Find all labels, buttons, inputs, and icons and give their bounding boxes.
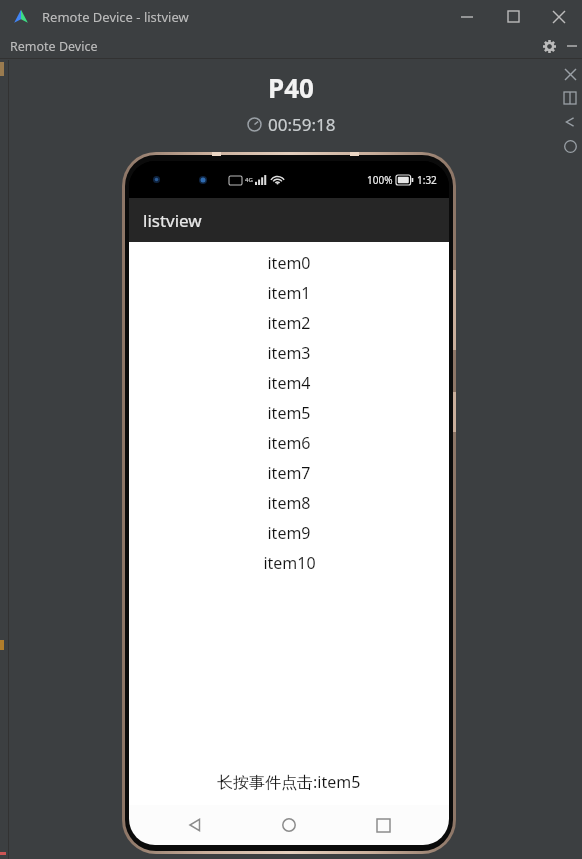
button[interactable]: item7 bbox=[129, 458, 449, 488]
button[interactable]: item4 bbox=[129, 368, 449, 398]
staticText: item10 bbox=[263, 552, 316, 574]
staticText: 100% bbox=[367, 173, 393, 187]
staticText: item5 bbox=[267, 402, 311, 424]
button[interactable]: item1 bbox=[129, 278, 449, 308]
button[interactable]: Minimize bbox=[444, 0, 490, 33]
staticText: item8 bbox=[267, 492, 311, 514]
staticText: item7 bbox=[267, 462, 311, 484]
button[interactable]: Maximize bbox=[490, 0, 536, 33]
staticText: item4 bbox=[267, 372, 311, 394]
button[interactable]: item10 bbox=[129, 548, 449, 578]
button[interactable]: item3 bbox=[129, 338, 449, 368]
staticText: Remote Device - listview bbox=[42, 8, 189, 26]
button[interactable]: item6 bbox=[129, 428, 449, 458]
button[interactable]: Screenshot bbox=[558, 86, 582, 110]
staticText: 4G bbox=[245, 176, 253, 184]
button[interactable]: item2 bbox=[129, 308, 449, 338]
button[interactable]: Hide bbox=[562, 36, 582, 56]
button[interactable]: Home bbox=[261, 805, 317, 845]
button[interactable]: listview bbox=[129, 198, 449, 242]
staticText: item0 bbox=[267, 252, 311, 274]
button[interactable]: Recents bbox=[355, 805, 411, 845]
staticText: item3 bbox=[267, 342, 311, 364]
staticText: listview bbox=[143, 209, 202, 232]
button[interactable]: Rotate bbox=[558, 134, 582, 158]
button[interactable]: item5 bbox=[129, 398, 449, 428]
staticText: 00:59:18 bbox=[268, 113, 336, 136]
staticText: item2 bbox=[267, 312, 311, 334]
staticText: item1 bbox=[267, 282, 311, 304]
button[interactable]: item8 bbox=[129, 488, 449, 518]
button[interactable]: item9 bbox=[129, 518, 449, 548]
button[interactable]: Settings bbox=[536, 33, 562, 59]
staticText: P40 bbox=[268, 70, 314, 105]
button[interactable]: Back bbox=[167, 805, 223, 845]
staticText: 长按事件点击:item5 bbox=[217, 771, 361, 793]
button[interactable]: Back bbox=[558, 110, 582, 134]
staticText: Remote Device bbox=[10, 38, 98, 55]
staticText: 1:32 bbox=[417, 173, 437, 187]
staticText: item6 bbox=[267, 432, 311, 454]
staticText: item9 bbox=[267, 522, 311, 544]
button[interactable]: item0 bbox=[129, 248, 449, 278]
button[interactable]: Close device bbox=[558, 62, 582, 86]
button[interactable]: Close bbox=[536, 0, 582, 33]
